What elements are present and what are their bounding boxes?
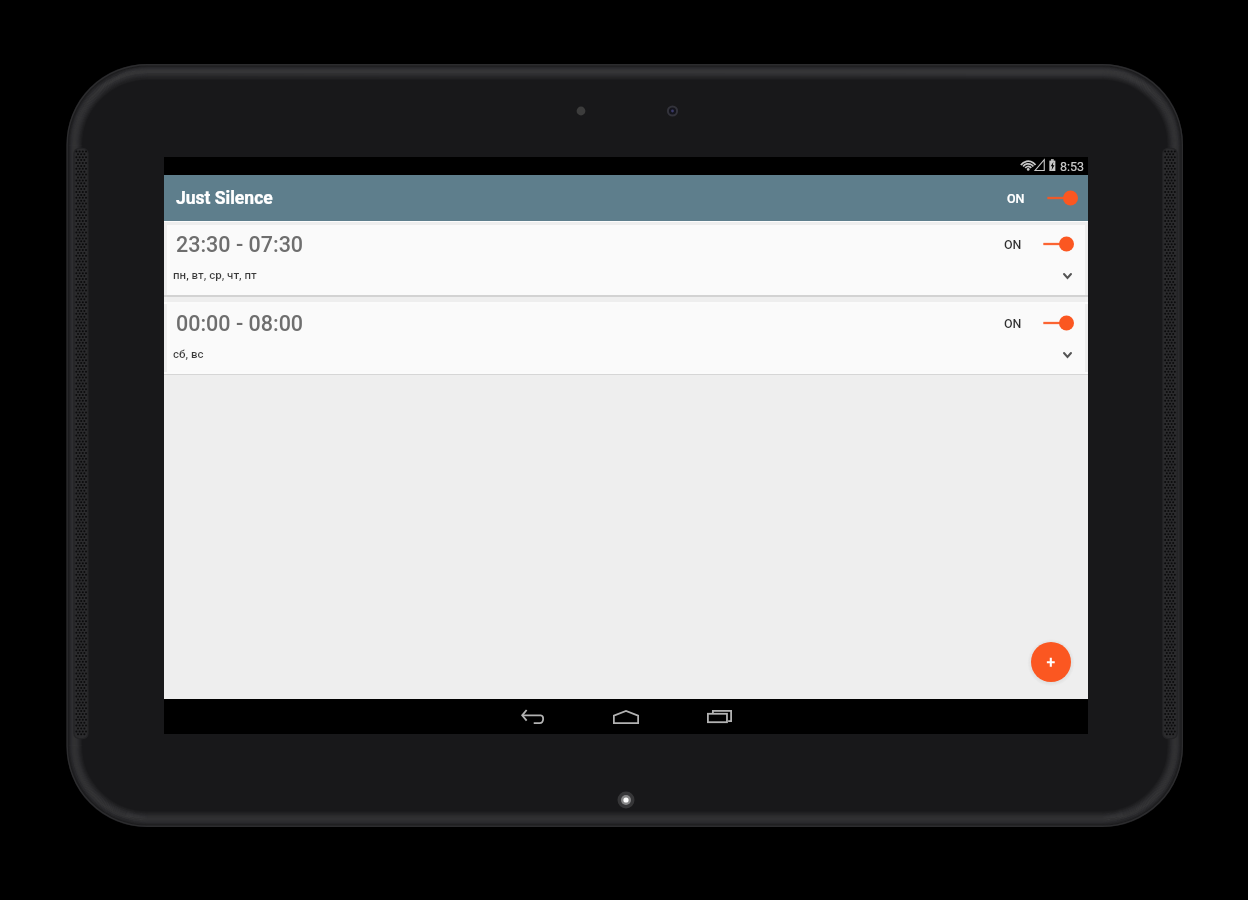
- staticText: 00:00 - 08:00: [176, 311, 304, 336]
- button[interactable]: Home: [598, 700, 654, 734]
- button[interactable]: Back: [505, 700, 561, 734]
- button[interactable]: 00:00 - 08:00: [167, 304, 1085, 372]
- staticText: 8:53: [1060, 159, 1085, 174]
- staticText: ON: [1004, 316, 1022, 331]
- staticText: ON: [1007, 191, 1025, 206]
- staticText: Just Silence: [176, 188, 273, 209]
- button[interactable]: Expand: [1057, 266, 1077, 286]
- button[interactable]: Add schedule: [1031, 642, 1071, 682]
- button[interactable]: 23:30 - 07:30: [167, 225, 1085, 295]
- button[interactable]: Expand: [1057, 345, 1077, 365]
- staticText: ON: [1004, 237, 1022, 252]
- staticText: пн, вт, ср, чт, пт: [173, 268, 257, 281]
- button[interactable]: Schedule switch, on: [1004, 315, 1074, 331]
- button[interactable]: Master switch, on: [1007, 190, 1078, 206]
- button[interactable]: Recent apps: [691, 700, 747, 734]
- staticText: сб, вс: [173, 347, 204, 360]
- button[interactable]: Schedule switch, on: [1004, 236, 1074, 252]
- staticText: 23:30 - 07:30: [176, 232, 304, 257]
